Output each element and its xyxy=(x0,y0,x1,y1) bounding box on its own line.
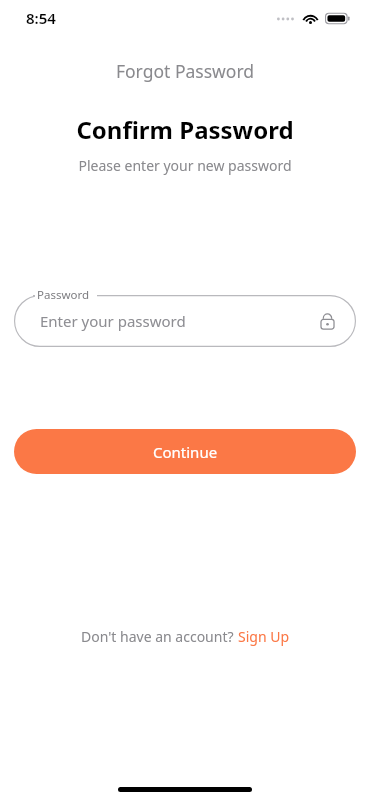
staticText: 8:54 xyxy=(26,8,56,28)
staticText: Password xyxy=(37,287,90,303)
staticText: Please enter your new password xyxy=(0,156,370,175)
staticText: Continue xyxy=(153,442,218,462)
staticText: Don't have an account? xyxy=(81,627,238,646)
staticText: Enter your password xyxy=(40,311,186,331)
button[interactable] xyxy=(14,295,356,347)
button[interactable]: Don't have an account? xyxy=(0,627,370,646)
staticText: Forgot Password xyxy=(0,59,370,83)
staticText: Confirm Password xyxy=(0,113,370,146)
button[interactable]: Toggle password visibility xyxy=(317,311,338,332)
button[interactable]: Continue xyxy=(14,429,356,474)
staticText: Sign Up xyxy=(238,627,290,646)
